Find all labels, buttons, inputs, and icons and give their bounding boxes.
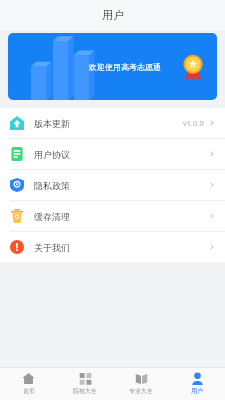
staticText: 版本更新 bbox=[34, 118, 70, 129]
button[interactable]: 欢迎使用高考志愿通 bbox=[8, 33, 217, 100]
staticText: 用户 bbox=[191, 387, 203, 395]
staticText: 首页 bbox=[23, 387, 35, 395]
button[interactable]: 缓存清理 bbox=[0, 201, 225, 231]
staticText: 欢迎使用高考志愿通 bbox=[89, 62, 161, 72]
button[interactable]: 用户 bbox=[169, 368, 225, 400]
staticText: 专业大全 bbox=[129, 387, 153, 395]
staticText: 用户协议 bbox=[34, 149, 70, 160]
button[interactable]: 专业大全 bbox=[113, 368, 169, 400]
staticText: v1.0.0 bbox=[183, 118, 204, 128]
button[interactable]: 隐私政策 bbox=[0, 170, 225, 200]
staticText: 院校大全 bbox=[73, 387, 97, 395]
staticText: 隐私政策 bbox=[34, 180, 70, 191]
button[interactable]: 首页 bbox=[0, 368, 57, 400]
button[interactable]: 版本更新 bbox=[0, 108, 225, 138]
button[interactable]: 关于我们 bbox=[0, 232, 225, 262]
staticText: 用户 bbox=[102, 8, 124, 22]
button[interactable]: 院校大全 bbox=[57, 368, 113, 400]
staticText: 缓存清理 bbox=[34, 211, 70, 222]
staticText: 关于我们 bbox=[34, 242, 70, 253]
button[interactable]: 用户协议 bbox=[0, 139, 225, 169]
